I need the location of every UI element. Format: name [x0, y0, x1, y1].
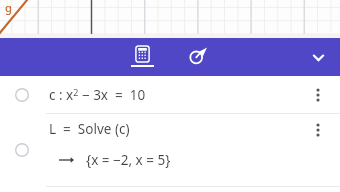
- button[interactable]: Toggle visibility: [10, 83, 34, 107]
- button[interactable]: More options: [305, 117, 331, 143]
- staticText: g: [5, 0, 12, 15]
- button[interactable]: Toggle visibility: [0, 76, 340, 113]
- staticText: c : x2 − 3x = 10: [49, 86, 146, 104]
- staticText: {x = −2, x = 5}: [86, 151, 171, 169]
- button[interactable]: Calculator: [120, 38, 164, 76]
- staticText: L = Solve (c): [49, 120, 130, 138]
- button[interactable]: More options: [305, 82, 331, 108]
- button[interactable]: Toggle visibility: [10, 138, 34, 162]
- button[interactable]: Toggle visibility: [0, 114, 340, 186]
- button[interactable]: Collapse panel: [303, 42, 333, 72]
- button[interactable]: Geometry: [176, 38, 220, 76]
